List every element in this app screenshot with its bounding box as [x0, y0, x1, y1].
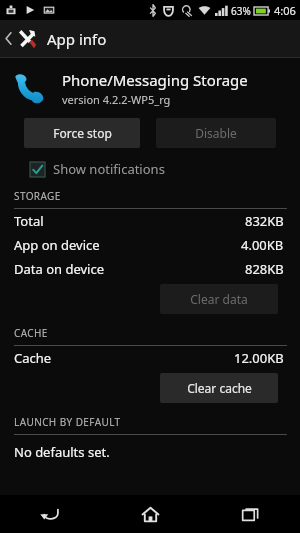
staticText: 4:06	[274, 3, 296, 18]
button[interactable]: Back	[0, 20, 41, 57]
button[interactable]: Total	[0, 209, 300, 233]
staticText: 63%	[231, 4, 251, 18]
staticText: Phone/Messaging Storage	[62, 70, 248, 90]
staticText: STORAGE	[14, 189, 61, 203]
staticText: Force stop	[53, 125, 112, 141]
button[interactable]: Force stop	[24, 118, 140, 148]
button[interactable]: App on device	[0, 233, 300, 257]
staticText: No defaults set.	[14, 443, 110, 461]
staticText: Cache	[14, 349, 52, 367]
staticText: Data on device	[14, 260, 105, 278]
staticText: CACHE	[14, 326, 48, 340]
button[interactable]: Cache	[0, 346, 300, 370]
staticText: LAUNCH BY DEFAULT	[14, 415, 121, 429]
button[interactable]: Data on device	[0, 257, 300, 281]
button[interactable]: Back	[0, 495, 100, 533]
staticText: App on device	[14, 236, 100, 254]
staticText: Clear data	[190, 291, 248, 307]
button[interactable]: Clear cache	[160, 373, 278, 403]
staticText: 832KB	[245, 212, 284, 230]
button[interactable]: Home	[100, 495, 200, 533]
staticText: Show notifications	[53, 160, 165, 178]
staticText: App info	[47, 29, 107, 49]
staticText: version 4.2.2-WP5_rg	[62, 92, 171, 107]
button[interactable]: Recent apps	[200, 495, 300, 533]
staticText: 4.00KB	[241, 236, 284, 254]
staticText: 12.00KB	[234, 349, 284, 367]
button[interactable]: Disable	[156, 118, 276, 148]
staticText: Clear cache	[187, 380, 252, 396]
button[interactable]: Clear data	[160, 284, 278, 314]
staticText: Disable	[195, 125, 237, 141]
button[interactable]: Show notifications	[28, 156, 167, 182]
staticText: 828KB	[245, 260, 284, 278]
staticText: Total	[14, 212, 44, 230]
